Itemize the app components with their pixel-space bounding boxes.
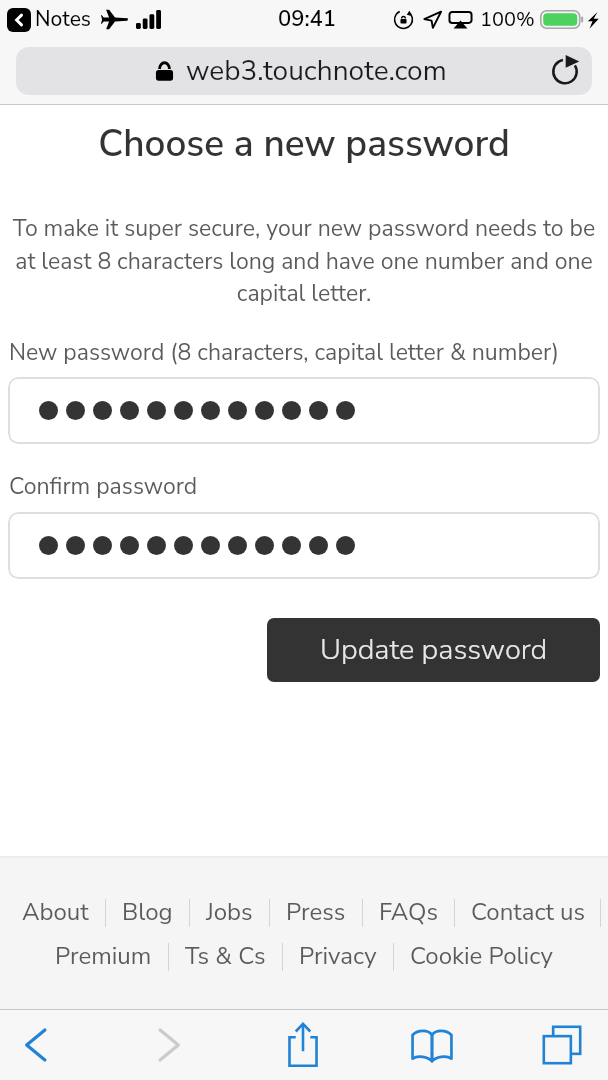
- button[interactable]: web3.touchnote.com: [16, 47, 592, 95]
- staticText: Choose a new password: [0, 119, 608, 169]
- button[interactable]: Press: [286, 896, 346, 929]
- staticText: To make it super secure, your new passwo…: [10, 213, 598, 309]
- staticText: Privacy: [299, 940, 377, 973]
- button[interactable]: Bookmarks: [405, 1010, 459, 1080]
- button[interactable]: Tabs: [536, 1010, 588, 1080]
- staticText: Premium: [55, 940, 152, 973]
- button[interactable]: Jobs: [206, 896, 253, 929]
- staticText: web3.touchnote.com: [186, 52, 447, 90]
- staticText: New password (8 characters, capital lett…: [9, 337, 560, 368]
- staticText: Confirm password: [9, 471, 198, 502]
- button[interactable]: Back: [9, 1010, 61, 1080]
- button[interactable]: Premium: [55, 940, 152, 973]
- staticText: About: [22, 896, 89, 929]
- staticText: Ts & Cs: [185, 940, 266, 973]
- button[interactable]: Blog: [122, 896, 173, 929]
- button[interactable]: FAQs: [379, 896, 438, 929]
- button[interactable]: Cookie Policy: [410, 940, 553, 973]
- staticText: Update password: [320, 630, 548, 670]
- button[interactable]: Reload page: [546, 52, 584, 90]
- staticText: FAQs: [379, 896, 438, 929]
- staticText: Blog: [122, 896, 173, 929]
- button[interactable]: About: [22, 896, 89, 929]
- button[interactable]: Share: [277, 1010, 329, 1080]
- staticText: Press: [286, 896, 346, 929]
- staticText: Cookie Policy: [410, 940, 553, 973]
- staticText: Notes: [35, 5, 91, 34]
- button[interactable]: Ts & Cs: [185, 940, 266, 973]
- staticText: Jobs: [206, 896, 253, 929]
- button[interactable]: [8, 377, 600, 444]
- staticText: 09:41: [278, 4, 337, 34]
- button[interactable]: Forward: [144, 1010, 196, 1080]
- button[interactable]: Contact us: [471, 896, 586, 929]
- button[interactable]: Privacy: [299, 940, 377, 973]
- staticText: 100%: [480, 6, 535, 33]
- staticText: Contact us: [471, 896, 586, 929]
- button[interactable]: Update password: [267, 618, 600, 682]
- button[interactable]: [8, 512, 600, 579]
- button[interactable]: Back to Notes: [7, 8, 31, 32]
